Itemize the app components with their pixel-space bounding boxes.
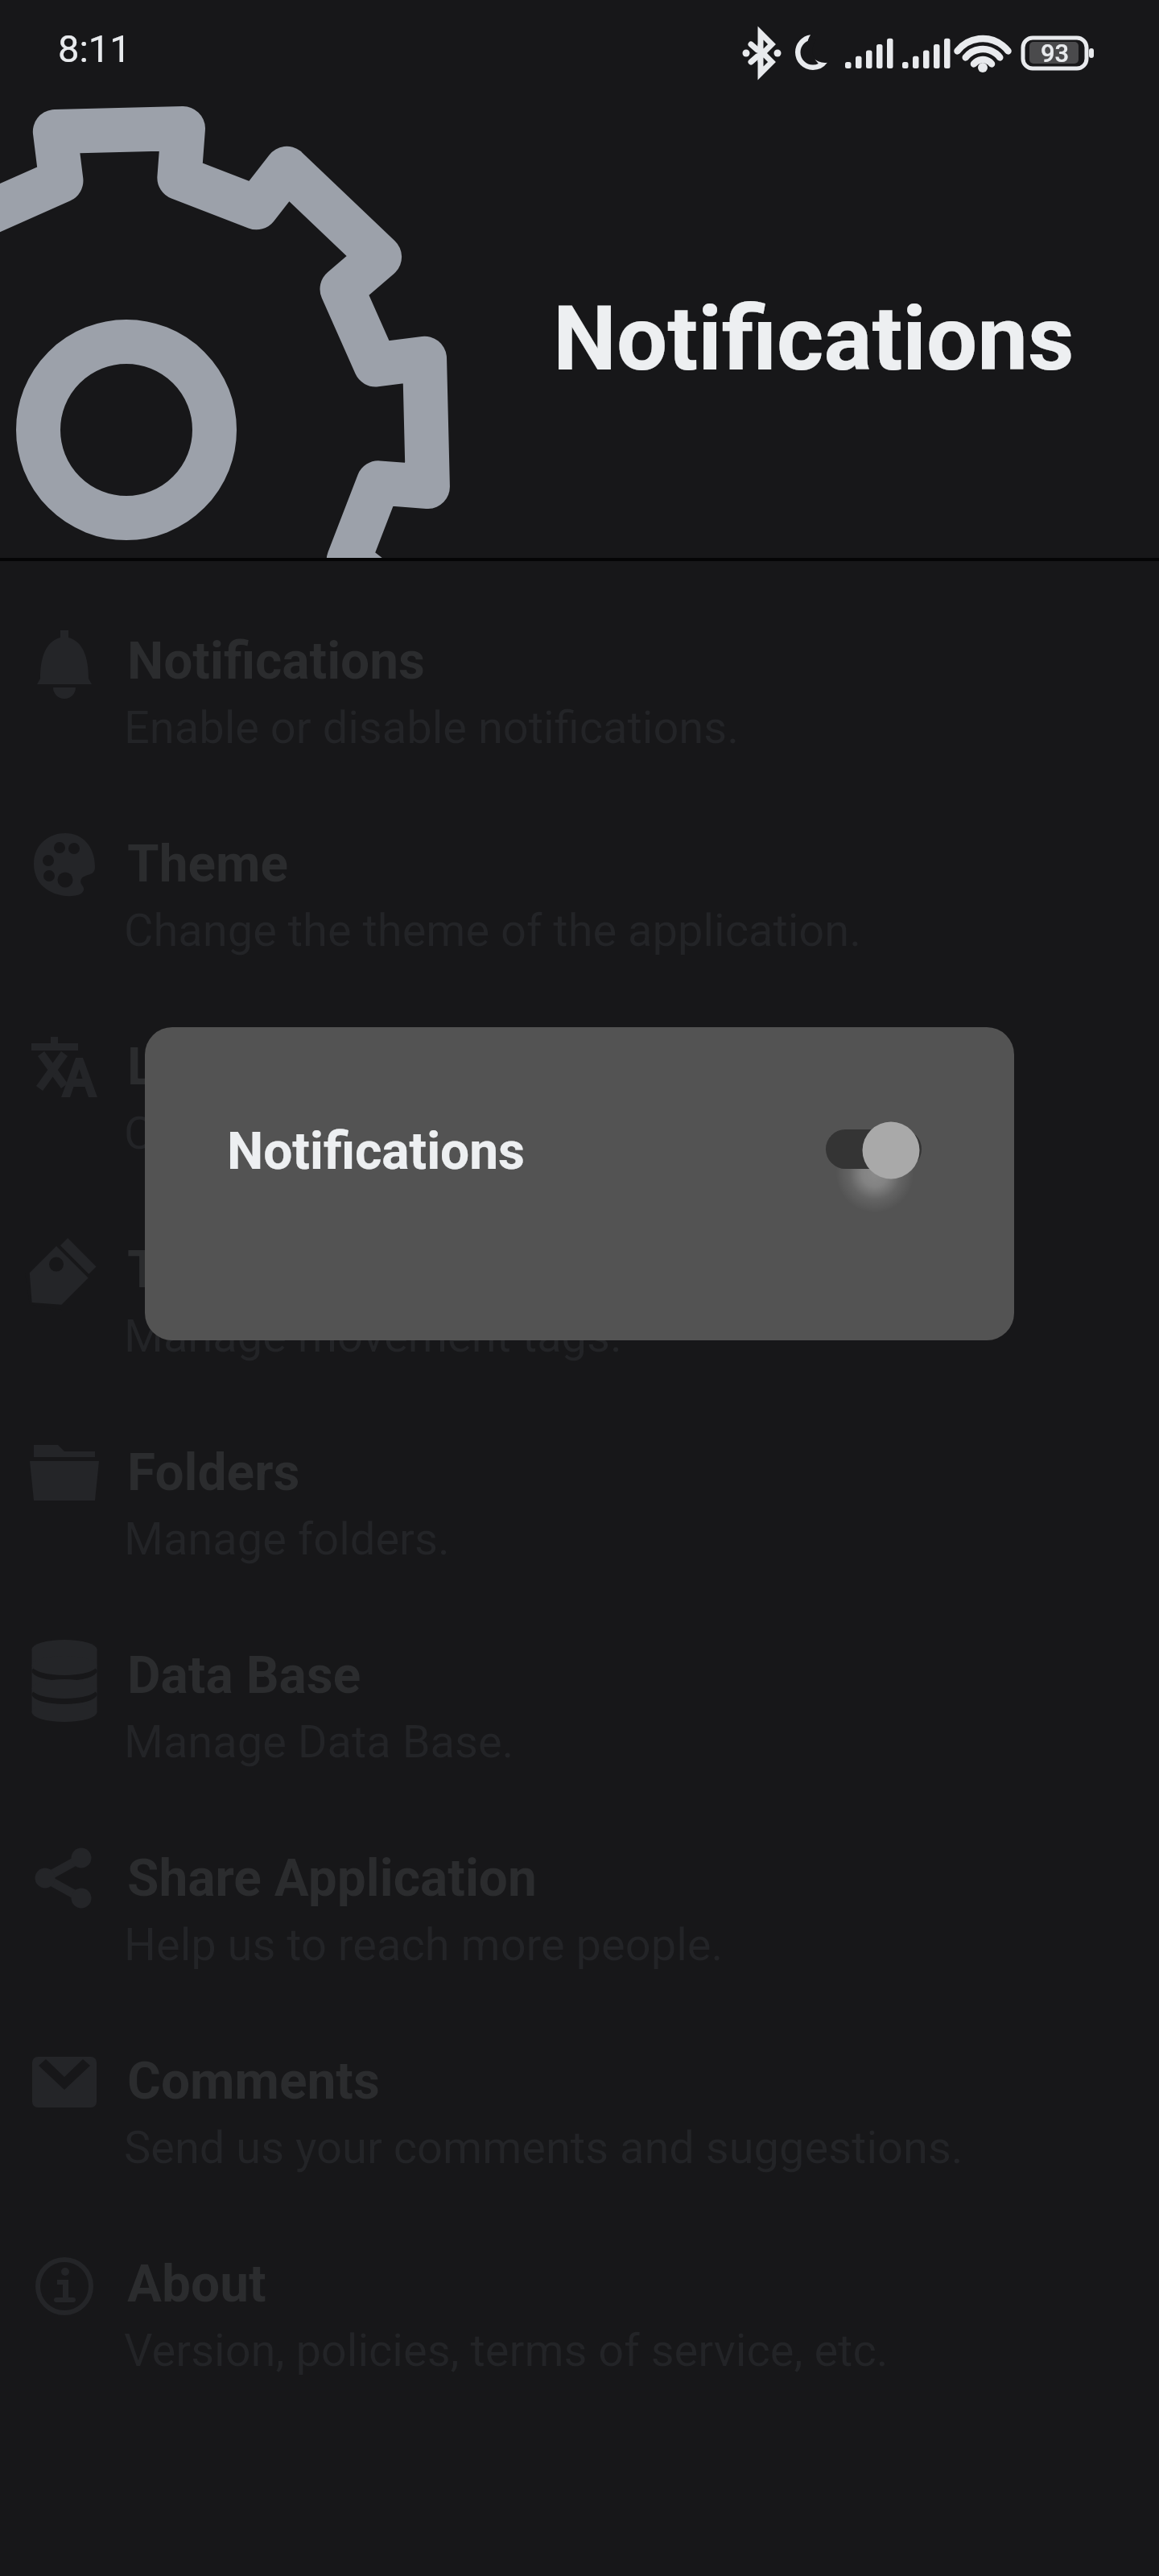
button[interactable]: Comments [0, 1984, 1159, 2187]
staticText: Notifications [227, 1121, 525, 1182]
button[interactable]: Notifications [0, 564, 1159, 767]
staticText: Manage Data Base. [124, 1715, 514, 1769]
button[interactable]: Data Base [0, 1579, 1159, 1781]
staticText: Version, policies, terms of service, etc… [124, 2324, 889, 2377]
staticText: Tags [127, 1240, 239, 1300]
staticText: Enable or disable notifications. [124, 701, 739, 754]
staticText: 8:11 [58, 27, 131, 71]
staticText: Send us your comments and suggestions. [124, 2121, 963, 2174]
button[interactable]: Notifications toggle [802, 1105, 931, 1202]
staticText: Language [127, 1037, 355, 1097]
button[interactable]: Folders [0, 1376, 1159, 1579]
button[interactable]: Language [0, 970, 1159, 1173]
staticText: Comments [127, 2051, 380, 2112]
staticText: Folders [127, 1443, 300, 1503]
staticText: Change the theme of the application. [124, 904, 861, 957]
button[interactable]: Share Application [0, 1781, 1159, 1984]
button[interactable]: Theme [0, 767, 1159, 970]
staticText: About [127, 2254, 266, 2314]
button[interactable]: Tags [0, 1173, 1159, 1376]
staticText: Change the language of the application. [124, 1107, 919, 1160]
staticText: Help us to reach more people. [124, 1918, 724, 1971]
staticText: Theme [127, 834, 289, 894]
staticText: Notifications [127, 631, 425, 691]
staticText: Manage movement tags. [124, 1310, 622, 1363]
button[interactable]: About [0, 2187, 1159, 2390]
staticText: Share Application [127, 1848, 537, 1909]
staticText: Manage folders. [124, 1513, 450, 1566]
staticText: Notifications [553, 286, 1074, 391]
staticText: 93 [1041, 39, 1070, 68]
staticText: Data Base [127, 1645, 361, 1706]
